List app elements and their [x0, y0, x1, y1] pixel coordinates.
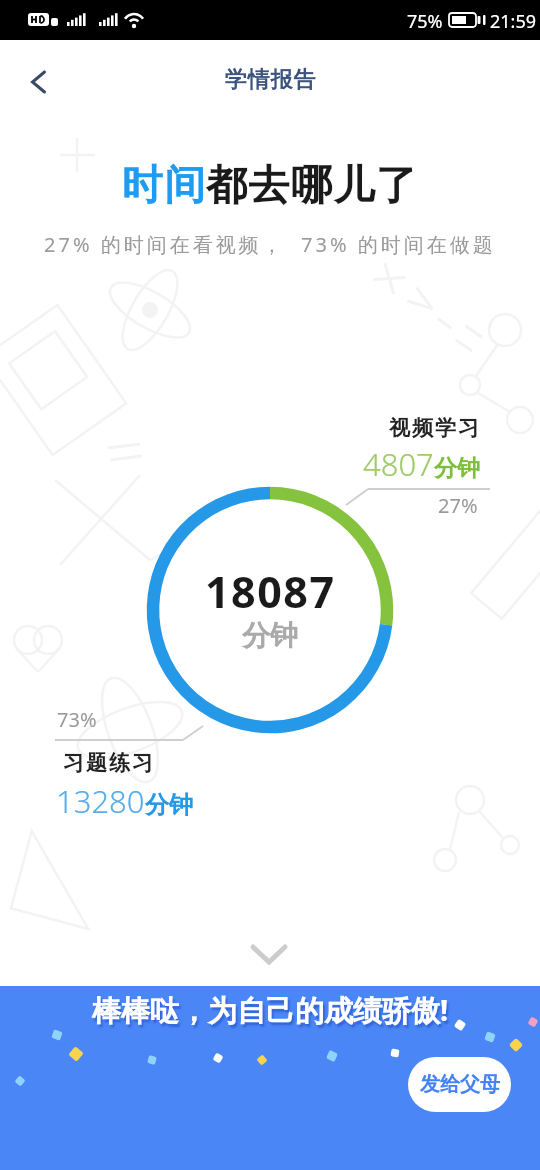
staticText: 27%: [438, 492, 478, 519]
staticText: 13280: [56, 780, 145, 822]
staticText: 27% 的时间在看视频， 73% 的时间在做题: [44, 231, 496, 258]
staticText: 分钟: [145, 790, 193, 820]
staticText: 21:59: [490, 9, 537, 34]
staticText: 发给父母: [420, 1072, 500, 1097]
staticText: 时间: [121, 160, 206, 212]
button[interactable]: [20, 64, 56, 100]
staticText: 4807: [363, 443, 434, 485]
staticText: 75%: [407, 9, 443, 34]
staticText: 73%: [57, 706, 97, 733]
staticText: 都去哪儿了: [206, 160, 419, 212]
staticText: 习题练习: [62, 750, 154, 776]
staticText: 视频学习: [388, 415, 480, 441]
staticText: 分钟: [434, 454, 480, 483]
staticText: 学情报告: [224, 66, 316, 94]
staticText: 棒棒哒，为自己的成绩骄傲!: [92, 990, 449, 1030]
staticText: 18087: [205, 562, 336, 621]
button[interactable]: 发给父母: [408, 1057, 511, 1112]
staticText: 分钟: [242, 618, 298, 653]
